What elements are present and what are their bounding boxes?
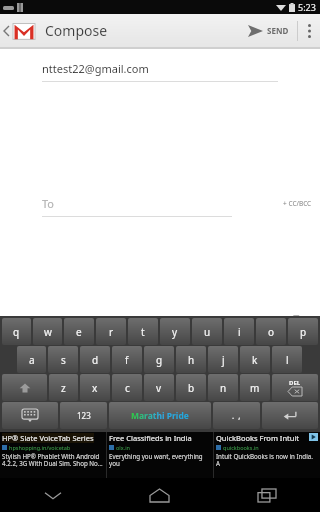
staticText: o [268, 325, 275, 339]
button[interactable]: nttest22@gmail.com [42, 55, 278, 82]
staticText: Marathi Pride [131, 410, 189, 422]
button[interactable]: w [33, 318, 62, 345]
staticText: n [220, 381, 227, 395]
button[interactable]: 123 [60, 402, 107, 429]
button[interactable]: Compose [0, 14, 116, 47]
button[interactable]: q [2, 318, 31, 345]
staticText: a [29, 353, 35, 367]
button[interactable]: l [272, 346, 302, 373]
staticText: To [42, 196, 55, 211]
button[interactable]: j [208, 346, 238, 373]
button[interactable]: Switch keyboard [2, 402, 58, 429]
staticText: w [44, 325, 52, 339]
button[interactable]: c [112, 374, 142, 401]
button[interactable]: f [112, 346, 142, 373]
button[interactable]: Enter [262, 402, 318, 429]
button[interactable]: k [240, 346, 270, 373]
button[interactable]: t [128, 318, 158, 345]
button[interactable]: b [176, 374, 206, 401]
button[interactable]: Free Classifieds in India [107, 432, 213, 478]
staticText: m [250, 381, 260, 395]
staticText: l [286, 353, 289, 367]
staticText: Everything you want, everything you need… [109, 452, 211, 468]
button[interactable]: x [80, 374, 110, 401]
staticText: nttest22@gmail.com [42, 61, 149, 76]
staticText: k [252, 353, 258, 367]
staticText: h [188, 353, 195, 367]
staticText: i [238, 325, 241, 339]
button[interactable]: h [176, 346, 206, 373]
staticText: b [188, 381, 195, 395]
staticText: z [61, 381, 66, 395]
staticText: Compose [45, 21, 108, 40]
staticText: p [300, 325, 307, 339]
button[interactable]: y [160, 318, 190, 345]
staticText: Intuit QuickBooks is now in India. A Mus… [216, 452, 318, 468]
staticText: HP® Slate VoiceTab Series [2, 433, 94, 443]
staticText: 5:23 [298, 1, 316, 13]
staticText: Free Classifieds in India [109, 433, 192, 443]
staticText: u [204, 325, 211, 339]
staticText: hpshopping.in/voicetab [9, 444, 71, 451]
button[interactable]: m [240, 374, 270, 401]
button[interactable]: + CC/BCC [274, 91, 320, 316]
button[interactable]: QuickBooks From Intuit [214, 432, 320, 478]
button[interactable]: e [64, 318, 94, 345]
staticText: v [156, 381, 162, 395]
button[interactable]: To [42, 190, 232, 217]
staticText: olx.in [116, 444, 130, 451]
button[interactable]: v [144, 374, 174, 401]
staticText: + CC/BCC [283, 199, 312, 208]
button[interactable]: . , [213, 402, 260, 429]
button[interactable]: n [208, 374, 238, 401]
button[interactable]: o [256, 318, 286, 345]
button[interactable]: Shift [2, 374, 47, 401]
button[interactable]: s [48, 346, 78, 373]
staticText: e [76, 325, 82, 339]
button[interactable]: Back [0, 478, 106, 512]
button[interactable]: HP® Slate VoiceTab Series [0, 432, 106, 478]
staticText: 123 [77, 410, 91, 421]
staticText: Stylish HP® Phablet With Android 4.2.2, … [2, 452, 104, 468]
staticText: QuickBooks From Intuit [216, 433, 300, 443]
staticText: DEL [289, 379, 301, 387]
staticText: x [92, 381, 98, 395]
button[interactable]: Delete [272, 374, 318, 401]
staticText: f [125, 353, 129, 367]
staticText: y [172, 325, 178, 339]
staticText: . , [232, 410, 241, 421]
staticText: s [61, 353, 66, 367]
staticText: r [109, 325, 114, 339]
button[interactable]: SEND [240, 14, 297, 47]
staticText: SEND [267, 25, 289, 36]
button[interactable]: d [80, 346, 110, 373]
button[interactable]: Recent apps [213, 478, 320, 512]
staticText: t [141, 325, 145, 339]
button[interactable]: More options [298, 14, 320, 47]
staticText: c [125, 381, 130, 395]
button[interactable]: Space [109, 402, 211, 429]
button[interactable]: i [224, 318, 254, 345]
staticText: d [92, 353, 99, 367]
button[interactable]: a [17, 346, 46, 373]
button[interactable]: z [49, 374, 78, 401]
button[interactable]: p [288, 318, 318, 345]
staticText: j [222, 353, 225, 367]
button[interactable]: r [96, 318, 126, 345]
button[interactable]: g [144, 346, 174, 373]
staticText: g [156, 353, 163, 367]
staticText: quickbooks.in [223, 444, 259, 451]
button[interactable]: Home [106, 478, 213, 512]
staticText: q [13, 325, 20, 339]
button[interactable]: u [192, 318, 222, 345]
